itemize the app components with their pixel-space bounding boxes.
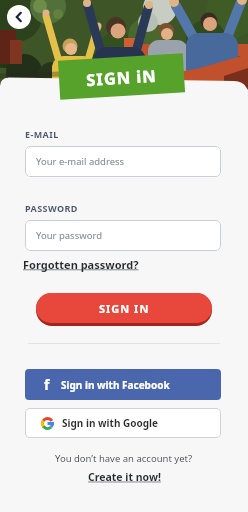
staticText: Sign in with Facebook — [61, 378, 170, 392]
button[interactable]: Your password — [25, 220, 221, 251]
button[interactable]: Your e-mail address — [25, 146, 221, 177]
staticText: Sign in with Google — [62, 416, 159, 430]
button[interactable]: f — [25, 369, 221, 400]
staticText: SIGN IN — [99, 301, 150, 316]
staticText: You don’t have an account yet? — [55, 452, 193, 465]
button[interactable]: Forgotten password? — [23, 257, 139, 272]
staticText: E-MAIL — [25, 128, 59, 140]
staticText: f — [44, 375, 50, 394]
staticText: PASSWORD — [25, 202, 78, 214]
button[interactable] — [7, 5, 31, 29]
button[interactable]: Create it now! — [88, 470, 161, 484]
button[interactable]: SIGN IN — [36, 293, 212, 323]
button[interactable]: Sign in with Google — [25, 408, 221, 438]
staticText: SIGN iN — [85, 64, 158, 90]
staticText: Your password — [36, 229, 102, 242]
staticText: Your e-mail address — [36, 155, 125, 168]
